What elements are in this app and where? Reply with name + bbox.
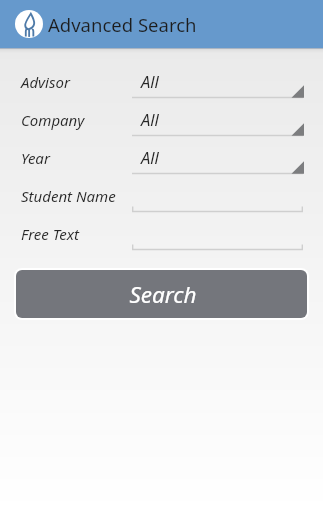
staticText: Student Name — [21, 186, 116, 206]
staticText: Year — [21, 148, 50, 168]
button[interactable]: Search — [16, 270, 307, 318]
staticText: Advanced Search — [48, 12, 197, 37]
staticText: Free Text — [21, 224, 79, 244]
staticText: Company — [21, 110, 85, 130]
staticText: All — [141, 108, 159, 130]
staticText: Advisor — [21, 72, 70, 92]
button[interactable]: Student Name — [0, 179, 323, 217]
staticText: Search — [129, 279, 197, 310]
button[interactable]: Free Text — [0, 217, 323, 255]
staticText: All — [141, 146, 159, 168]
button[interactable]: Advisor — [0, 65, 323, 103]
button[interactable]: Company — [0, 103, 323, 141]
staticText: All — [141, 70, 159, 92]
button[interactable]: Year — [0, 141, 323, 179]
